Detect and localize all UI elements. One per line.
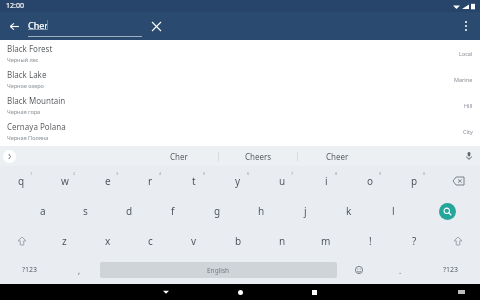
button[interactable]: Cher [140, 146, 218, 166]
staticText: Black Forest [7, 43, 53, 54]
button[interactable]: Emoji [337, 256, 380, 284]
button[interactable]: z [43, 226, 86, 256]
staticText: i [325, 174, 328, 188]
staticText: j [304, 204, 307, 218]
button[interactable]: Backspace [436, 166, 480, 196]
button[interactable]: ? [392, 226, 436, 256]
staticText: Cheer [326, 151, 349, 162]
button[interactable]: k [327, 196, 371, 226]
button[interactable]: g [195, 196, 239, 226]
button[interactable]: Keyboard switcher [454, 285, 468, 299]
button[interactable]: f [151, 196, 195, 226]
staticText: l [392, 204, 395, 218]
button[interactable]: p [392, 166, 436, 196]
button[interactable]: i [304, 166, 348, 196]
button[interactable]: Hide keyboard [159, 285, 173, 299]
staticText: e [105, 174, 111, 188]
staticText: 1 [30, 171, 33, 176]
button[interactable]: Shift [436, 226, 480, 256]
button[interactable]: n [260, 226, 304, 256]
staticText: t [192, 174, 196, 188]
button[interactable]: a [21, 196, 64, 226]
staticText: k [346, 204, 352, 218]
staticText: Cher [28, 19, 49, 31]
button[interactable]: b [216, 226, 260, 256]
staticText: y [235, 174, 241, 188]
staticText: f [171, 204, 175, 218]
staticText: Marine [454, 76, 473, 83]
button[interactable]: Back [0, 12, 28, 40]
staticText: 0 [423, 171, 426, 176]
staticText: u [279, 174, 286, 188]
button[interactable]: w [43, 166, 86, 196]
staticText: Local [459, 50, 473, 57]
staticText: 4 [159, 171, 162, 176]
staticText: z [62, 234, 67, 248]
staticText: Cheers [245, 151, 272, 162]
button[interactable]: h [239, 196, 283, 226]
button[interactable]: x [86, 226, 129, 256]
staticText: Черный лес [7, 56, 39, 63]
button[interactable]: q [0, 166, 43, 196]
button[interactable]: Cheer [298, 146, 376, 166]
button[interactable]: More options [452, 12, 480, 40]
button[interactable]: Expand suggestions [3, 150, 16, 163]
button[interactable]: Shift [0, 226, 43, 256]
button[interactable]: Cernaya Polana [0, 118, 480, 144]
staticText: 7 [291, 171, 294, 176]
button[interactable]: m [304, 226, 348, 256]
button[interactable]: Voice input [462, 149, 476, 163]
button[interactable]: , [59, 256, 100, 284]
staticText: o [367, 174, 374, 188]
button[interactable]: Recents [307, 285, 321, 299]
button[interactable]: l [371, 196, 415, 226]
staticText: 12:00 [6, 1, 24, 11]
staticText: ! [369, 234, 372, 248]
button[interactable]: y [216, 166, 260, 196]
button[interactable]: s [64, 196, 107, 226]
button[interactable]: Cheers [219, 146, 297, 166]
button[interactable]: ! [348, 226, 392, 256]
staticText: 9 [379, 171, 382, 176]
staticText: 8 [335, 171, 338, 176]
staticText: ?123 [443, 265, 459, 275]
button[interactable]: Home [233, 285, 247, 299]
button[interactable]: t [172, 166, 216, 196]
staticText: City [463, 128, 473, 135]
button[interactable]: ?123 [0, 256, 59, 284]
staticText: , [78, 265, 81, 276]
staticText: q [18, 174, 25, 188]
button[interactable]: u [260, 166, 304, 196]
staticText: ?123 [22, 265, 38, 275]
button[interactable]: e [86, 166, 129, 196]
button[interactable]: Black Forest [0, 40, 480, 66]
staticText: s [83, 204, 88, 218]
button[interactable]: Black Mountain [0, 92, 480, 118]
staticText: 5 [203, 171, 206, 176]
button[interactable]: Cher [28, 12, 142, 40]
button[interactable]: Black Lake [0, 66, 480, 92]
button[interactable]: v [172, 226, 216, 256]
staticText: Черная Поляна [7, 134, 49, 141]
staticText: x [105, 234, 111, 248]
staticText: a [40, 204, 46, 218]
button[interactable]: o [348, 166, 392, 196]
staticText: w [61, 174, 69, 188]
staticText: v [191, 234, 197, 248]
staticText: c [148, 234, 153, 248]
button[interactable]: c [129, 226, 172, 256]
staticText: Black Mountain [7, 95, 66, 106]
staticText: ? [412, 234, 417, 248]
button[interactable]: d [107, 196, 151, 226]
staticText: 6 [247, 171, 250, 176]
button[interactable]: English [100, 262, 337, 278]
button[interactable]: j [283, 196, 327, 226]
button[interactable]: ?123 [421, 256, 480, 284]
button[interactable]: Search [415, 196, 480, 226]
staticText: g [214, 204, 221, 218]
button[interactable]: r [129, 166, 172, 196]
button[interactable]: Clear [142, 12, 170, 40]
